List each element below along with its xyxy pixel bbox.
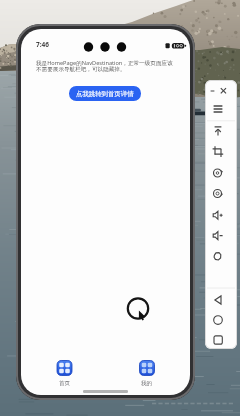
button[interactable] — [208, 150, 234, 170]
button[interactable]: 首页 — [49, 357, 81, 387]
button[interactable] — [208, 128, 234, 148]
button[interactable]: 点我跳转到首页详情 — [69, 86, 141, 101]
button[interactable] — [208, 216, 234, 236]
staticText: 点我跳转到首页详情 — [76, 90, 134, 98]
button[interactable] — [208, 194, 234, 214]
button[interactable] — [208, 106, 234, 126]
button[interactable] — [208, 304, 234, 324]
button[interactable] — [208, 326, 234, 346]
staticText: 不需要展示导航栏吧，可以隐藏掉。 — [36, 66, 126, 73]
button[interactable] — [208, 282, 234, 302]
button[interactable] — [208, 172, 234, 192]
staticText: 我的 — [141, 380, 153, 387]
button[interactable] — [208, 84, 234, 104]
staticText: 7:46 — [36, 40, 49, 49]
button[interactable] — [208, 238, 234, 258]
button[interactable]: 我的 — [131, 357, 163, 387]
button[interactable] — [208, 260, 234, 280]
staticText: 我是HomePage的NavDestination，正常一级页面应该 — [36, 59, 173, 67]
staticText: 首页 — [59, 380, 71, 387]
